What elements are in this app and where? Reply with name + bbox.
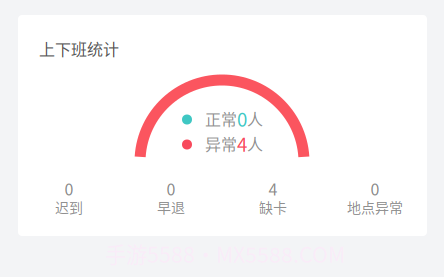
button[interactable]: 0 (120, 180, 222, 216)
button[interactable]: 0 (324, 180, 426, 216)
button[interactable]: 异常 (182, 130, 263, 157)
button[interactable]: 4 (222, 180, 324, 216)
staticText: 0 (237, 105, 247, 132)
staticText: 4 (268, 177, 277, 200)
staticText: 0 (370, 177, 379, 200)
staticText: 人 (247, 132, 263, 155)
button[interactable]: 正常 (182, 105, 263, 132)
staticText: 异常 (205, 132, 237, 155)
staticText: 正常 (205, 107, 237, 130)
staticText: 人 (247, 107, 263, 130)
staticText: 上下班统计 (39, 37, 119, 60)
staticText: 4 (237, 130, 247, 157)
staticText: 0 (166, 177, 175, 200)
staticText: 地点异常 (347, 197, 403, 217)
staticText: 早退 (157, 197, 185, 217)
staticText: 0 (64, 177, 73, 200)
staticText: 迟到 (55, 197, 83, 217)
button[interactable]: 0 (18, 180, 120, 216)
staticText: 缺卡 (259, 197, 287, 217)
